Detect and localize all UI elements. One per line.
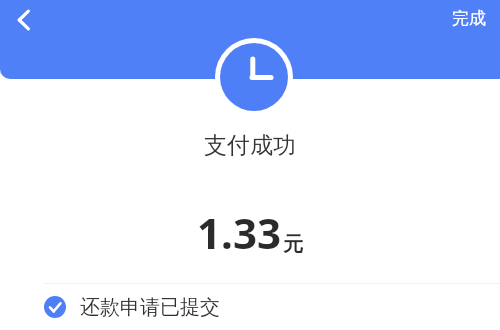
staticText: 支付成功 (204, 131, 296, 160)
button[interactable]: Back (2, 0, 46, 40)
staticText: 元 (283, 232, 303, 257)
staticText: 还款申请已提交 (80, 295, 220, 320)
staticText: 1.33 (197, 204, 281, 261)
staticText: 完成 (452, 8, 486, 29)
button[interactable]: 还款申请已提交 (0, 284, 500, 330)
button[interactable]: 完成 (438, 2, 500, 35)
